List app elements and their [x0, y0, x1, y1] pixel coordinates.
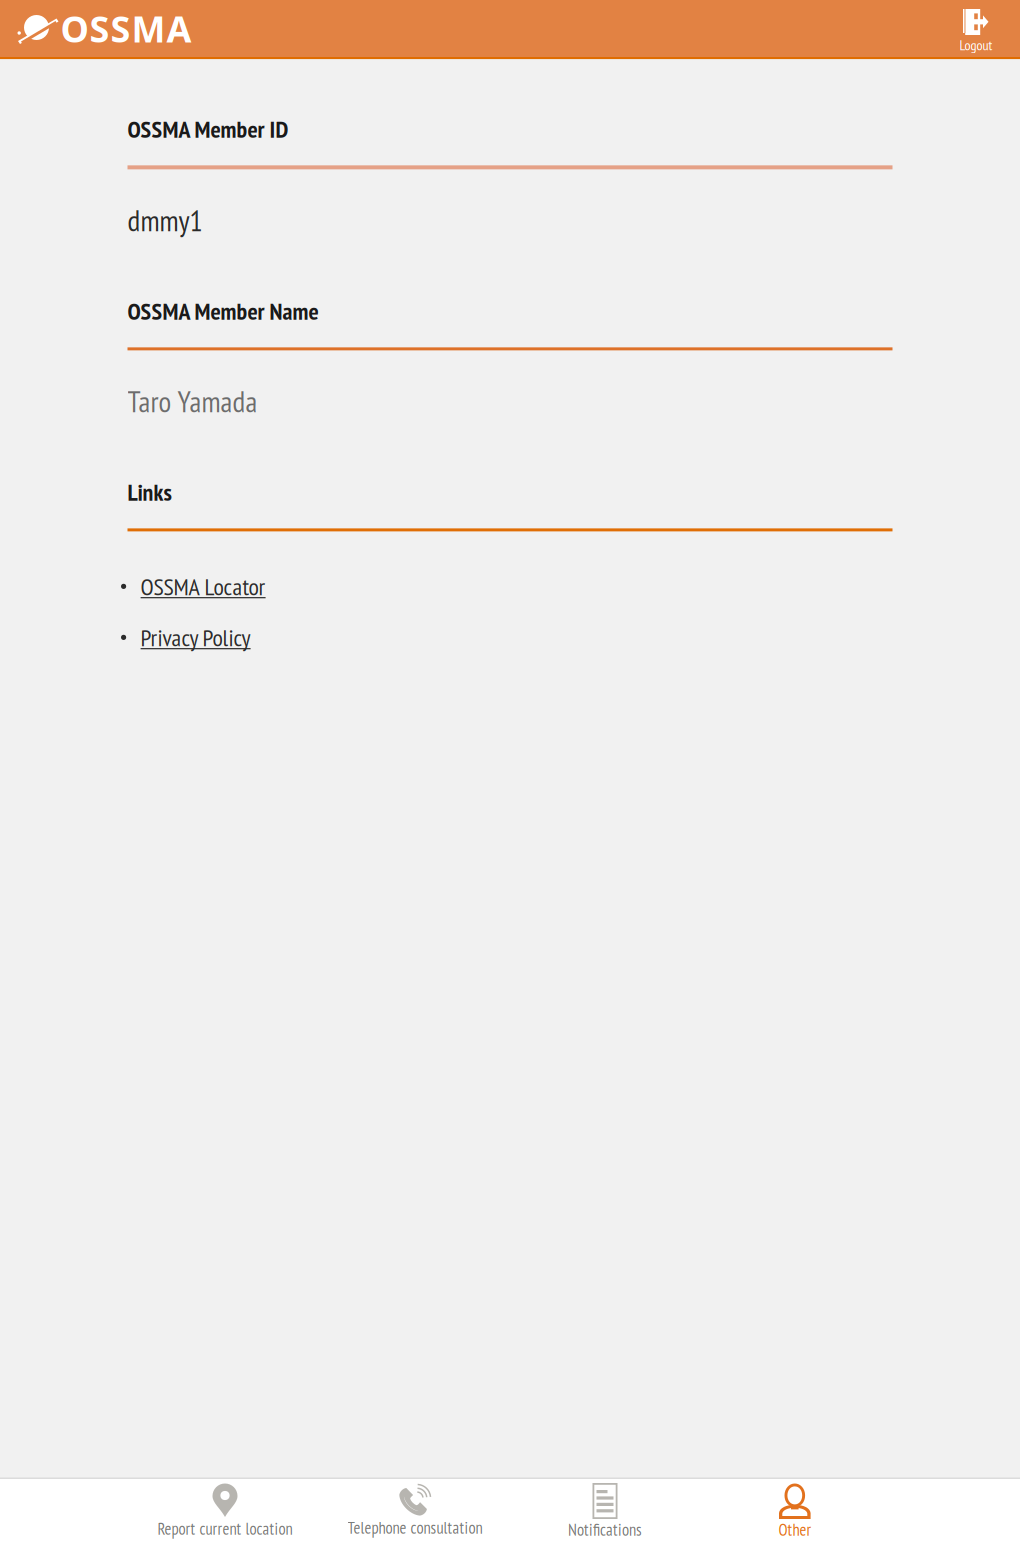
staticText: Other — [778, 1519, 811, 1540]
button[interactable]: Privacy Policy — [127, 624, 251, 650]
staticText: OSSMA Locator — [141, 571, 266, 602]
button[interactable]: OSSMA home — [0, 0, 242, 57]
staticText: Report current location — [157, 1518, 292, 1539]
staticText: OSSMA — [60, 4, 191, 53]
staticText: OSSMA Member Name — [127, 295, 318, 326]
staticText: Logout — [959, 36, 992, 54]
staticText: Taro Yamada — [127, 382, 257, 420]
button[interactable]: Report current location — [130, 1479, 320, 1541]
staticText: dmmy1 — [127, 201, 202, 239]
staticText: Telephone consultation — [347, 1517, 482, 1538]
button[interactable]: Logout — [941, 0, 1020, 57]
button[interactable]: OSSMA Locator — [127, 573, 266, 599]
staticText: Privacy Policy — [141, 622, 251, 653]
button[interactable]: Other — [700, 1479, 890, 1541]
staticText: OSSMA Member ID — [127, 113, 288, 144]
staticText: Notifications — [568, 1519, 642, 1540]
button[interactable]: Telephone consultation — [320, 1479, 510, 1541]
button[interactable]: Notifications — [510, 1479, 700, 1541]
staticText: Links — [127, 476, 171, 507]
